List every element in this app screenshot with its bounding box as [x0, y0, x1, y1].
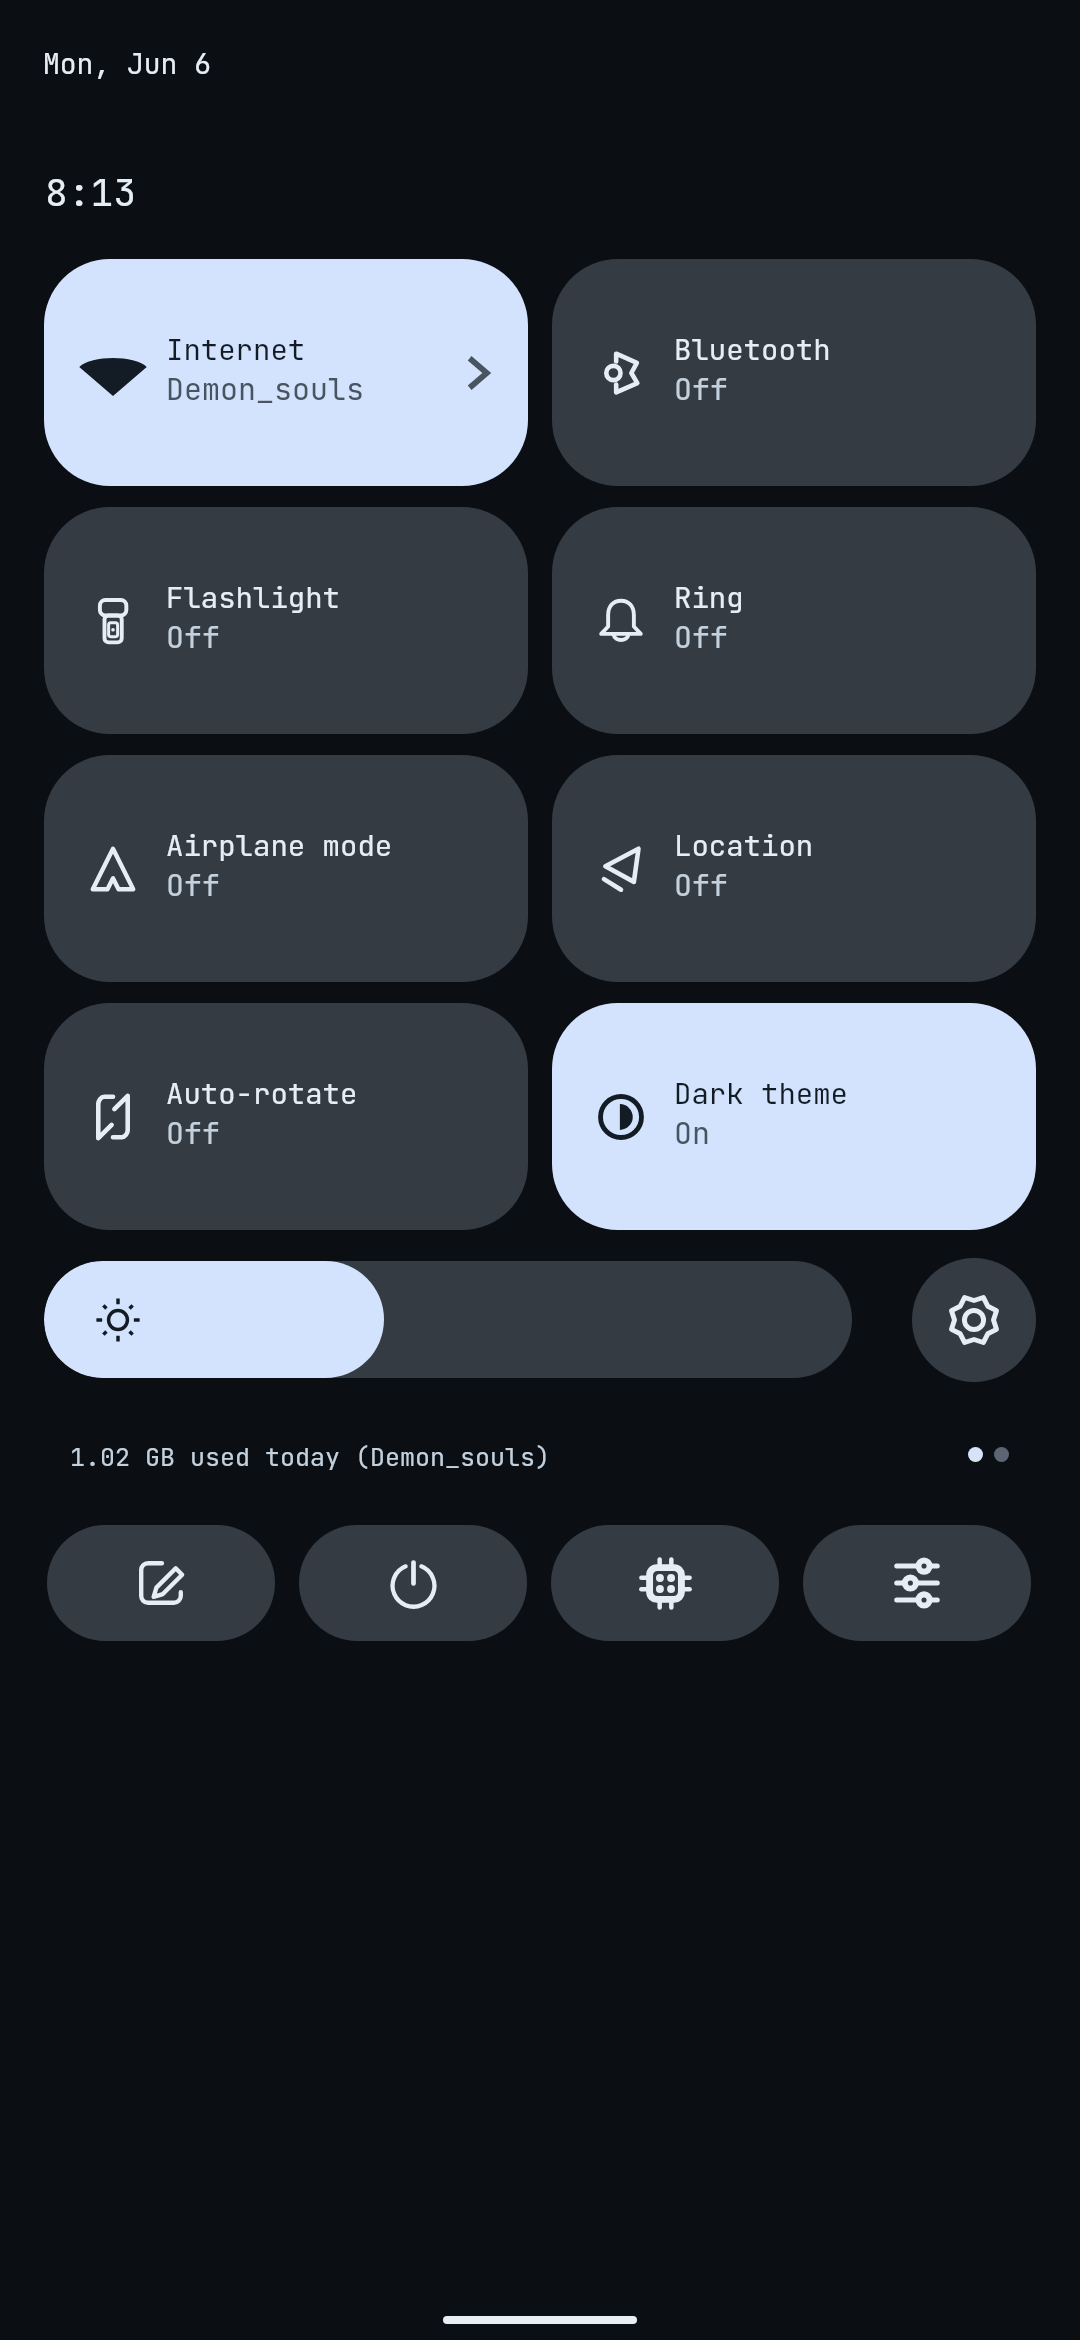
staticText: Demon_souls	[166, 370, 364, 409]
staticText: Internet	[166, 331, 306, 369]
staticText: 1.02 GB used today (Demon_souls)	[70, 1441, 551, 1474]
button[interactable]: Auto-rotate	[44, 1003, 528, 1230]
button[interactable]: Dark theme	[552, 1003, 1036, 1230]
staticText: On	[674, 1114, 710, 1153]
staticText: Location	[674, 827, 814, 865]
staticText: Off	[674, 866, 728, 905]
staticText: Bluetooth	[674, 331, 831, 369]
staticText: 8:13	[45, 168, 137, 217]
button[interactable]: Device controls	[551, 1525, 779, 1641]
button[interactable]: Bluetooth	[552, 259, 1036, 486]
button[interactable]: Power	[299, 1525, 527, 1641]
button[interactable]: Flashlight	[44, 507, 528, 734]
staticText: Off	[674, 370, 728, 409]
button[interactable]: Ring	[552, 507, 1036, 734]
staticText: Mon, Jun 6	[43, 46, 212, 82]
staticText: Ring	[674, 579, 744, 617]
staticText: Off	[166, 1114, 220, 1153]
button[interactable]: Open settings	[912, 1258, 1036, 1382]
staticText: Auto-rotate	[166, 1075, 358, 1113]
staticText: Off	[166, 618, 220, 657]
button[interactable]: Quick settings	[803, 1525, 1031, 1641]
staticText: Dark theme	[674, 1075, 849, 1113]
staticText: Off	[166, 866, 220, 905]
staticText: Flashlight	[166, 579, 341, 617]
button[interactable]: Airplane mode	[44, 755, 528, 982]
button[interactable]: Edit tiles	[47, 1525, 275, 1641]
button[interactable]: Brightness	[44, 1261, 852, 1378]
button[interactable]: Location	[552, 755, 1036, 982]
staticText: Off	[674, 618, 728, 657]
staticText: Airplane mode	[166, 827, 393, 865]
button[interactable]: Internet	[44, 259, 528, 486]
